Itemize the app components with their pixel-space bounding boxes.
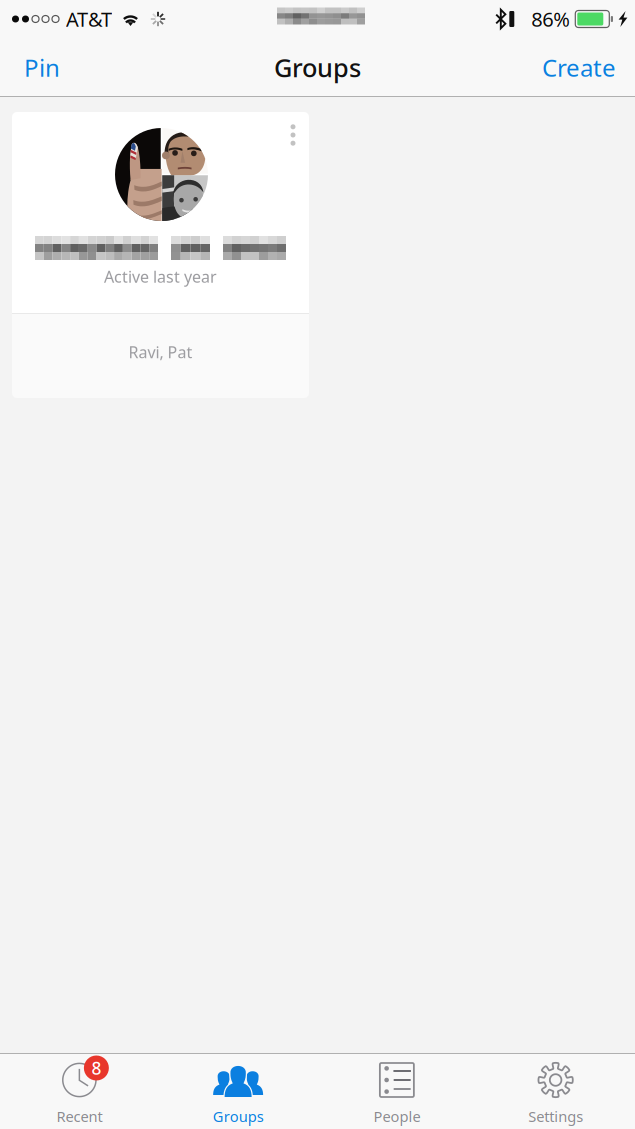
- button[interactable]: More options: [277, 112, 309, 158]
- staticText: Ravi, Pat: [128, 341, 192, 363]
- button[interactable]: Create: [524, 38, 635, 97]
- button[interactable]: Pin: [0, 38, 78, 97]
- button[interactable]: 8: [0, 1053, 159, 1129]
- staticText: Create: [542, 52, 616, 83]
- button[interactable]: Groups: [159, 1053, 318, 1129]
- staticText: Settings: [528, 1106, 583, 1126]
- button[interactable]: People: [317, 1053, 476, 1129]
- button[interactable]: Active last year: [12, 112, 309, 398]
- staticText: Groups: [274, 51, 361, 84]
- staticText: 8: [91, 1056, 101, 1079]
- staticText: Recent: [56, 1106, 102, 1126]
- button[interactable]: Settings: [476, 1053, 635, 1129]
- staticText: Active last year: [104, 266, 217, 287]
- staticText: AT&T: [66, 6, 112, 32]
- staticText: Groups: [213, 1106, 264, 1126]
- staticText: People: [373, 1106, 420, 1126]
- staticText: 86%: [531, 6, 570, 32]
- staticText: Pin: [24, 52, 60, 83]
